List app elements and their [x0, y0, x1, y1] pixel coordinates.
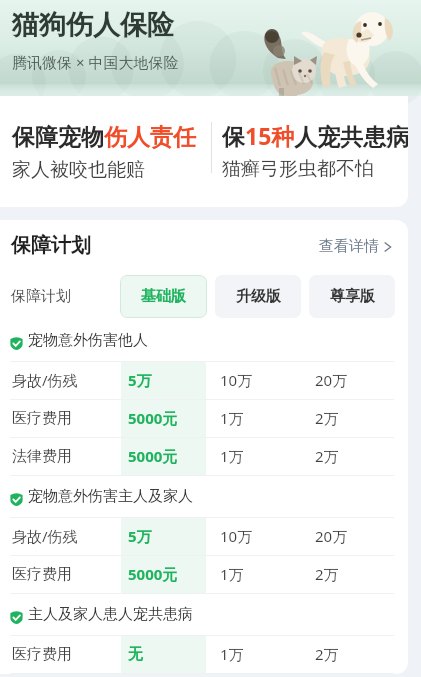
staticText: 5000元 [128, 446, 178, 466]
staticText: 无 [128, 645, 143, 664]
staticText: 1万 [220, 564, 244, 584]
staticText: 医疗费用 [12, 565, 72, 584]
staticText: 保障计划 [11, 233, 91, 258]
staticText: 2万 [315, 644, 339, 664]
staticText: 2万 [315, 408, 339, 428]
staticText: 尊享版 [330, 287, 375, 306]
staticText: 腾讯微保 × 中国大地保险 [12, 52, 179, 72]
button[interactable]: 升级版 [215, 275, 301, 318]
staticText: 宠物意外伤害主人及家人 [28, 487, 193, 506]
staticText: 10万 [220, 526, 253, 546]
staticText: 基础版 [141, 287, 186, 306]
staticText: 主人及家人患人宠共患病 [28, 605, 193, 624]
staticText: 身故/伤残 [12, 526, 78, 546]
staticText: 升级版 [236, 287, 281, 306]
staticText: 2万 [315, 564, 339, 584]
button[interactable]: 尊享版 [309, 275, 395, 318]
staticText: 保15种人宠共患病 [222, 120, 408, 151]
staticText: 1万 [220, 644, 244, 664]
staticText: 5万 [128, 370, 152, 390]
staticText: 20万 [315, 370, 348, 390]
staticText: 1万 [220, 446, 244, 466]
staticText: 20万 [315, 526, 348, 546]
staticText: 查看详情 [319, 237, 379, 256]
staticText: 保障计划 [11, 287, 71, 306]
staticText: 医疗费用 [12, 409, 72, 428]
staticText: 宠物意外伤害他人 [28, 331, 148, 350]
staticText: 5万 [128, 526, 152, 546]
staticText: 5000元 [128, 564, 178, 584]
staticText: 法律费用 [12, 447, 72, 466]
button[interactable]: 查看详情 [319, 237, 394, 256]
staticText: 5000元 [128, 408, 178, 428]
staticText: 保障宠物伤人责任 [12, 123, 196, 152]
staticText: 1万 [220, 408, 244, 428]
staticText: 2万 [315, 446, 339, 466]
staticText: 猫狗伤人保险 [12, 8, 174, 42]
staticText: 猫癣弓形虫都不怕 [222, 157, 374, 181]
staticText: 医疗费用 [12, 645, 72, 664]
staticText: 家人被咬也能赔 [12, 158, 145, 182]
staticText: 10万 [220, 370, 253, 390]
staticText: 身故/伤残 [12, 370, 78, 390]
button[interactable]: 基础版 [120, 275, 207, 318]
